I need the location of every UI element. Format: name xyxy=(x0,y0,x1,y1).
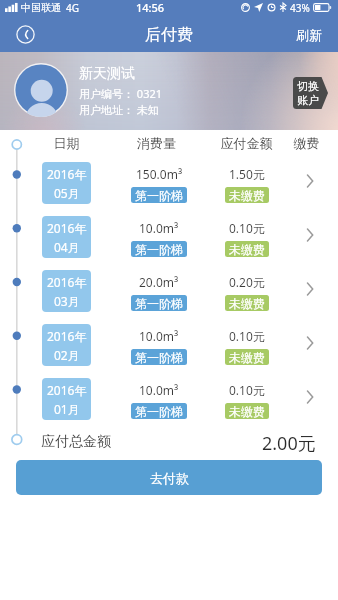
staticText: 10.0m³ xyxy=(139,382,179,398)
staticText: 第一阶梯 xyxy=(135,296,183,311)
staticText: 第一阶梯 xyxy=(135,404,183,419)
staticText: 43% xyxy=(290,1,310,15)
staticText: 应付金额 xyxy=(210,135,283,151)
staticText: 03月 xyxy=(54,293,80,309)
staticText: 应付总金额 xyxy=(41,433,111,451)
staticText: 缴费 xyxy=(279,135,334,151)
staticText: 后付费 xyxy=(145,25,193,45)
staticText: 02月 xyxy=(54,347,80,363)
staticText: 0.10元 xyxy=(229,328,265,344)
staticText: 新天测试 xyxy=(79,65,135,83)
staticText: 10.0m³ xyxy=(139,328,179,344)
staticText: 去付款 xyxy=(150,470,189,486)
staticText: 第一阶梯 xyxy=(135,242,183,257)
staticText: 0.20元 xyxy=(229,274,265,290)
button[interactable]: 去付款 xyxy=(16,460,322,495)
staticText: 未缴费 xyxy=(229,296,265,311)
staticText: 未缴费 xyxy=(229,188,265,203)
button[interactable]: 2016年 xyxy=(0,322,338,376)
staticText: 10.0m³ xyxy=(139,220,179,236)
staticText: 150.0m³ xyxy=(136,166,183,182)
button[interactable]: Back xyxy=(14,23,36,45)
button[interactable]: 2016年 xyxy=(0,160,338,214)
staticText: 切换 xyxy=(297,79,319,93)
staticText: 14:56 xyxy=(136,0,165,15)
staticText: 2016年 xyxy=(47,166,87,182)
staticText: 用户编号： 0321 xyxy=(79,86,163,101)
staticText: 2016年 xyxy=(47,220,87,236)
button[interactable]: 2016年 xyxy=(0,214,338,268)
staticText: 2016年 xyxy=(47,328,87,344)
staticText: 05月 xyxy=(54,185,80,201)
staticText: 01月 xyxy=(54,401,80,417)
staticText: 2016年 xyxy=(47,274,87,290)
button[interactable]: 刷新 xyxy=(290,24,338,46)
staticText: 第一阶梯 xyxy=(135,350,183,365)
staticText: 2.00元 xyxy=(262,431,316,452)
staticText: 4G xyxy=(66,1,79,15)
staticText: 账户 xyxy=(297,93,319,107)
staticText: 未缴费 xyxy=(229,242,265,257)
staticText: 1.50元 xyxy=(229,166,265,182)
staticText: 04月 xyxy=(54,239,80,255)
staticText: 用户地址： 未知 xyxy=(79,102,159,117)
staticText: 未缴费 xyxy=(229,350,265,365)
button[interactable]: 2016年 xyxy=(0,376,338,430)
button[interactable]: 切换 xyxy=(293,77,328,109)
staticText: 20.0m³ xyxy=(139,274,179,290)
button[interactable]: 2016年 xyxy=(0,268,338,322)
staticText: 2016年 xyxy=(47,382,87,398)
staticText: 日期 xyxy=(28,135,105,151)
staticText: 0.10元 xyxy=(229,220,265,236)
staticText: 刷新 xyxy=(296,27,322,43)
staticText: 0.10元 xyxy=(229,382,265,398)
staticText: 中国联通 xyxy=(21,1,61,14)
staticText: 第一阶梯 xyxy=(135,188,183,203)
staticText: 消费量 xyxy=(104,135,209,151)
staticText: 未缴费 xyxy=(229,404,265,419)
